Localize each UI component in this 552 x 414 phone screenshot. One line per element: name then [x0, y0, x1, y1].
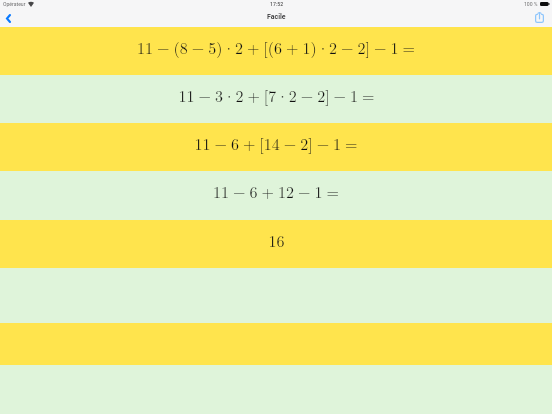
staticText: 17:52 [270, 1, 284, 7]
staticText: 11 − (8 − 5)·2 + [(6 + 1)·2 − 2] − 1 = [137, 36, 415, 59]
staticText: 16 [268, 229, 285, 252]
button[interactable]: Share [530, 11, 552, 27]
button[interactable]: 11 − (8 − 5)·2 + [(6 + 1)·2 − 2] − 1 = [0, 27, 552, 76]
button[interactable]: 11 − 6 + [14 − 2] − 1 = [0, 123, 552, 171]
button[interactable]: 11 − 3·2 + [7·2 − 2] − 1 = [0, 75, 552, 123]
button[interactable]: 11 − 6 + 12 − 1 = [0, 171, 552, 220]
staticText: Facile [267, 13, 286, 21]
button[interactable]: Back [0, 11, 20, 27]
staticText: 11 − 6 + [14 − 2] − 1 = [194, 132, 358, 155]
button[interactable]: 16 [0, 220, 552, 268]
staticText: 11 − 3·2 + [7·2 − 2] − 1 = [178, 84, 375, 107]
staticText: Opérateur [3, 1, 26, 7]
staticText: 100 % [524, 1, 538, 7]
staticText: 11 − 6 + 12 − 1 = [213, 180, 339, 203]
